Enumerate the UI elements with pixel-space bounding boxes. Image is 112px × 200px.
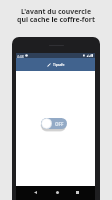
button[interactable]: Back — [30, 187, 41, 198]
staticText: OFF — [55, 121, 64, 127]
staticText: L'avant du couvercle qui cache le coffre… — [0, 7, 112, 24]
staticText: 4:48 — [17, 54, 24, 58]
button[interactable]: Recents — [72, 187, 83, 198]
button[interactable]: Home — [52, 187, 63, 198]
staticText: Tipsafe — [53, 62, 65, 67]
button[interactable]: Toggle safe — [41, 118, 67, 129]
button[interactable]: Tipsafe — [16, 58, 95, 71]
